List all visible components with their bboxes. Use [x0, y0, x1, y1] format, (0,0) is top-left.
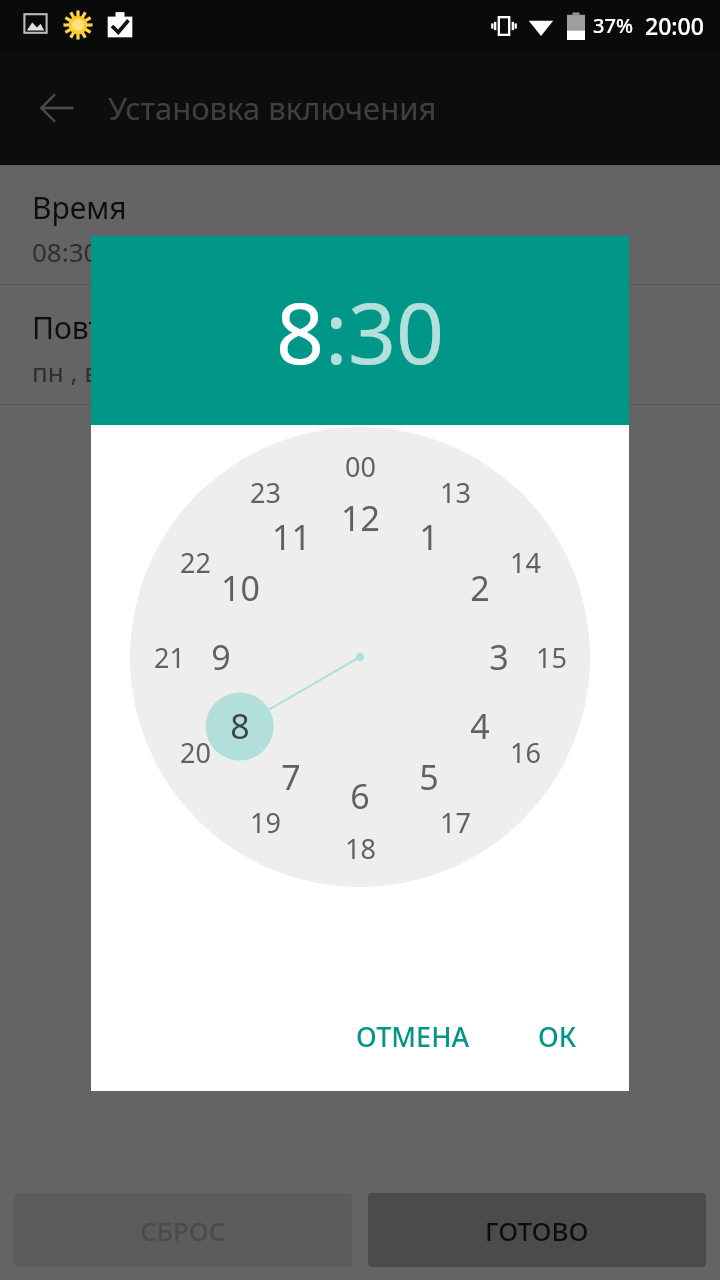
- button[interactable]: ГОТОВО: [368, 1193, 706, 1267]
- staticText: пн , вт , ср , чт , пт: [32, 354, 257, 389]
- button[interactable]: 8: [276, 274, 325, 388]
- staticText: 20:00: [645, 10, 704, 41]
- staticText: 6: [350, 773, 370, 819]
- staticText: 00: [345, 448, 376, 485]
- staticText: Повтор: [32, 307, 139, 348]
- button[interactable]: Время: [0, 165, 720, 284]
- staticText: 11: [272, 514, 311, 560]
- staticText: 20: [180, 734, 211, 771]
- staticText: 14: [510, 544, 541, 581]
- staticText: 8: [230, 703, 250, 749]
- staticText: СБРОС: [140, 1213, 226, 1248]
- staticText: Время: [32, 187, 127, 228]
- staticText: 13: [440, 474, 471, 511]
- staticText: 2: [470, 565, 490, 611]
- staticText: 22: [180, 544, 211, 581]
- staticText: Установка включения: [108, 87, 437, 129]
- staticText: 19: [250, 804, 281, 841]
- staticText: 12: [341, 495, 380, 541]
- staticText: 4: [470, 703, 490, 749]
- button[interactable]: 30: [348, 274, 445, 388]
- staticText: 1: [419, 514, 439, 560]
- staticText: ГОТОВО: [485, 1213, 589, 1248]
- staticText: 5: [419, 754, 439, 800]
- staticText: 9: [211, 634, 231, 680]
- staticText: 37%: [593, 12, 633, 39]
- staticText: 21: [154, 639, 185, 676]
- staticText: 23: [250, 474, 281, 511]
- staticText: 17: [440, 804, 471, 841]
- staticText: 3: [489, 634, 509, 680]
- staticText: 8: [276, 274, 325, 388]
- staticText: ОК: [538, 1018, 577, 1055]
- button[interactable]: Back: [0, 50, 720, 165]
- button[interactable]: 12: [130, 427, 590, 887]
- button[interactable]: Back: [30, 81, 84, 135]
- button[interactable]: ОК: [522, 1006, 593, 1067]
- staticText: 08:30: [32, 234, 99, 269]
- staticText: ОТМЕНА: [356, 1018, 470, 1055]
- staticText: 15: [536, 639, 567, 676]
- button[interactable]: ОТМЕНА: [340, 1006, 486, 1067]
- staticText: 7: [281, 754, 301, 800]
- staticText: 18: [345, 830, 376, 867]
- button[interactable]: Повтор: [0, 285, 720, 404]
- staticText: :: [325, 274, 348, 388]
- staticText: 16: [510, 734, 541, 771]
- staticText: 30: [348, 274, 445, 388]
- staticText: 10: [221, 565, 260, 611]
